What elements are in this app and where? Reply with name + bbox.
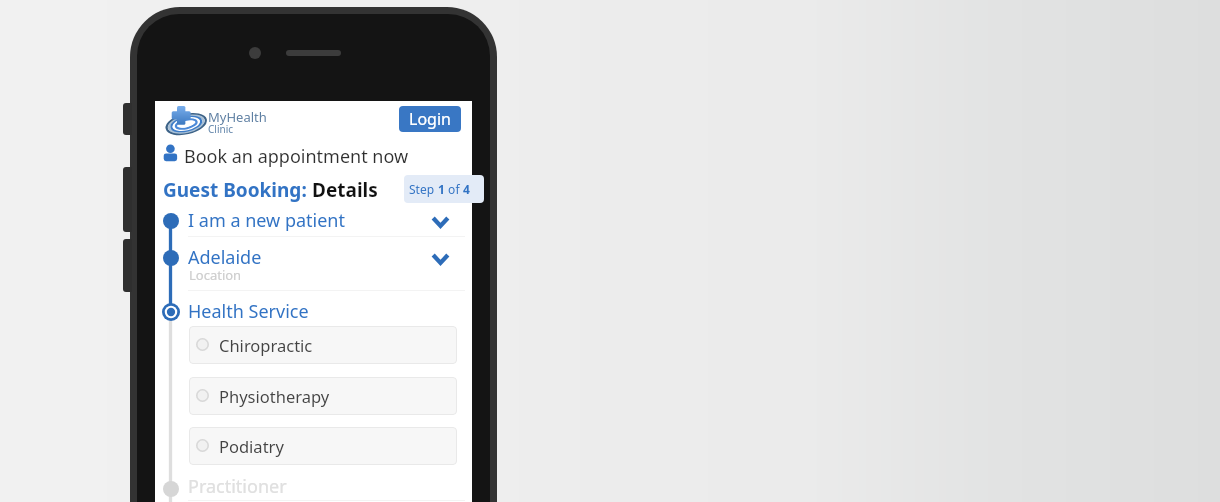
staticText: 1: [438, 181, 445, 197]
staticText: Practitioner: [188, 474, 287, 499]
staticText: Details: [312, 177, 378, 203]
staticText: Login: [409, 108, 451, 130]
button[interactable]: Chiropractic: [189, 326, 457, 364]
staticText: Clinic: [208, 122, 234, 136]
staticText: Location: [189, 266, 242, 284]
staticText: Health Service: [188, 299, 309, 324]
button[interactable]: Login: [399, 106, 461, 132]
staticText: MyHealth: [208, 108, 267, 126]
button[interactable]: Health Service: [188, 299, 472, 325]
staticText: Physiotherapy: [219, 385, 330, 407]
button[interactable]: Step: [404, 175, 484, 203]
button[interactable]: Account: [162, 144, 179, 161]
staticText: Adelaide: [188, 245, 262, 270]
staticText: Chiropractic: [219, 334, 313, 356]
button[interactable]: I am a new patient: [188, 208, 472, 234]
button[interactable]: Podiatry: [189, 427, 457, 465]
button[interactable]: Adelaide: [188, 245, 472, 287]
staticText: Step: [409, 181, 438, 197]
button[interactable]: Practitioner: [188, 474, 472, 500]
staticText: Podiatry: [219, 435, 284, 457]
staticText: Book an appointment now: [184, 144, 409, 169]
staticText: Guest Booking:: [163, 177, 312, 203]
staticText: 4: [463, 181, 470, 197]
button[interactable]: Physiotherapy: [189, 377, 457, 415]
staticText: I am a new patient: [188, 208, 345, 233]
staticText: of: [445, 181, 463, 197]
